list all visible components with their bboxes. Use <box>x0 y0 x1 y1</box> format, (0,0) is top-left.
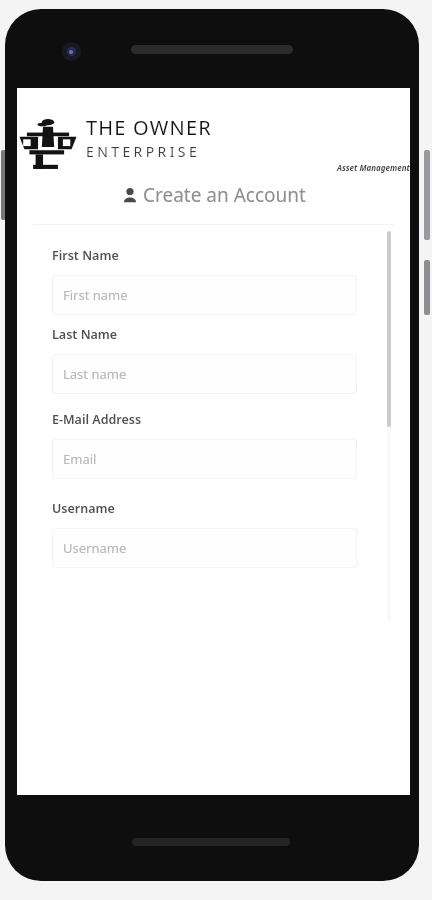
staticText: Email <box>63 450 97 468</box>
staticText: First Name <box>52 247 119 264</box>
button[interactable]: Account <box>17 182 410 208</box>
staticText: Asset Management <box>337 162 410 173</box>
other: Account <box>122 187 138 203</box>
staticText: ENTERPRISE <box>86 142 201 161</box>
button[interactable]: Username <box>52 528 357 568</box>
button[interactable]: First name <box>52 275 357 315</box>
staticText: Create an Account <box>143 182 306 208</box>
staticText: Username <box>52 500 115 517</box>
button[interactable]: Email <box>52 439 357 479</box>
staticText: Username <box>63 539 127 557</box>
button[interactable]: Last name <box>52 354 357 394</box>
staticText: First name <box>63 286 128 304</box>
staticText: THE OWNER <box>86 114 212 141</box>
staticText: E-Mail Address <box>52 411 142 428</box>
staticText: Last Name <box>52 326 118 343</box>
staticText: Last name <box>63 365 127 383</box>
